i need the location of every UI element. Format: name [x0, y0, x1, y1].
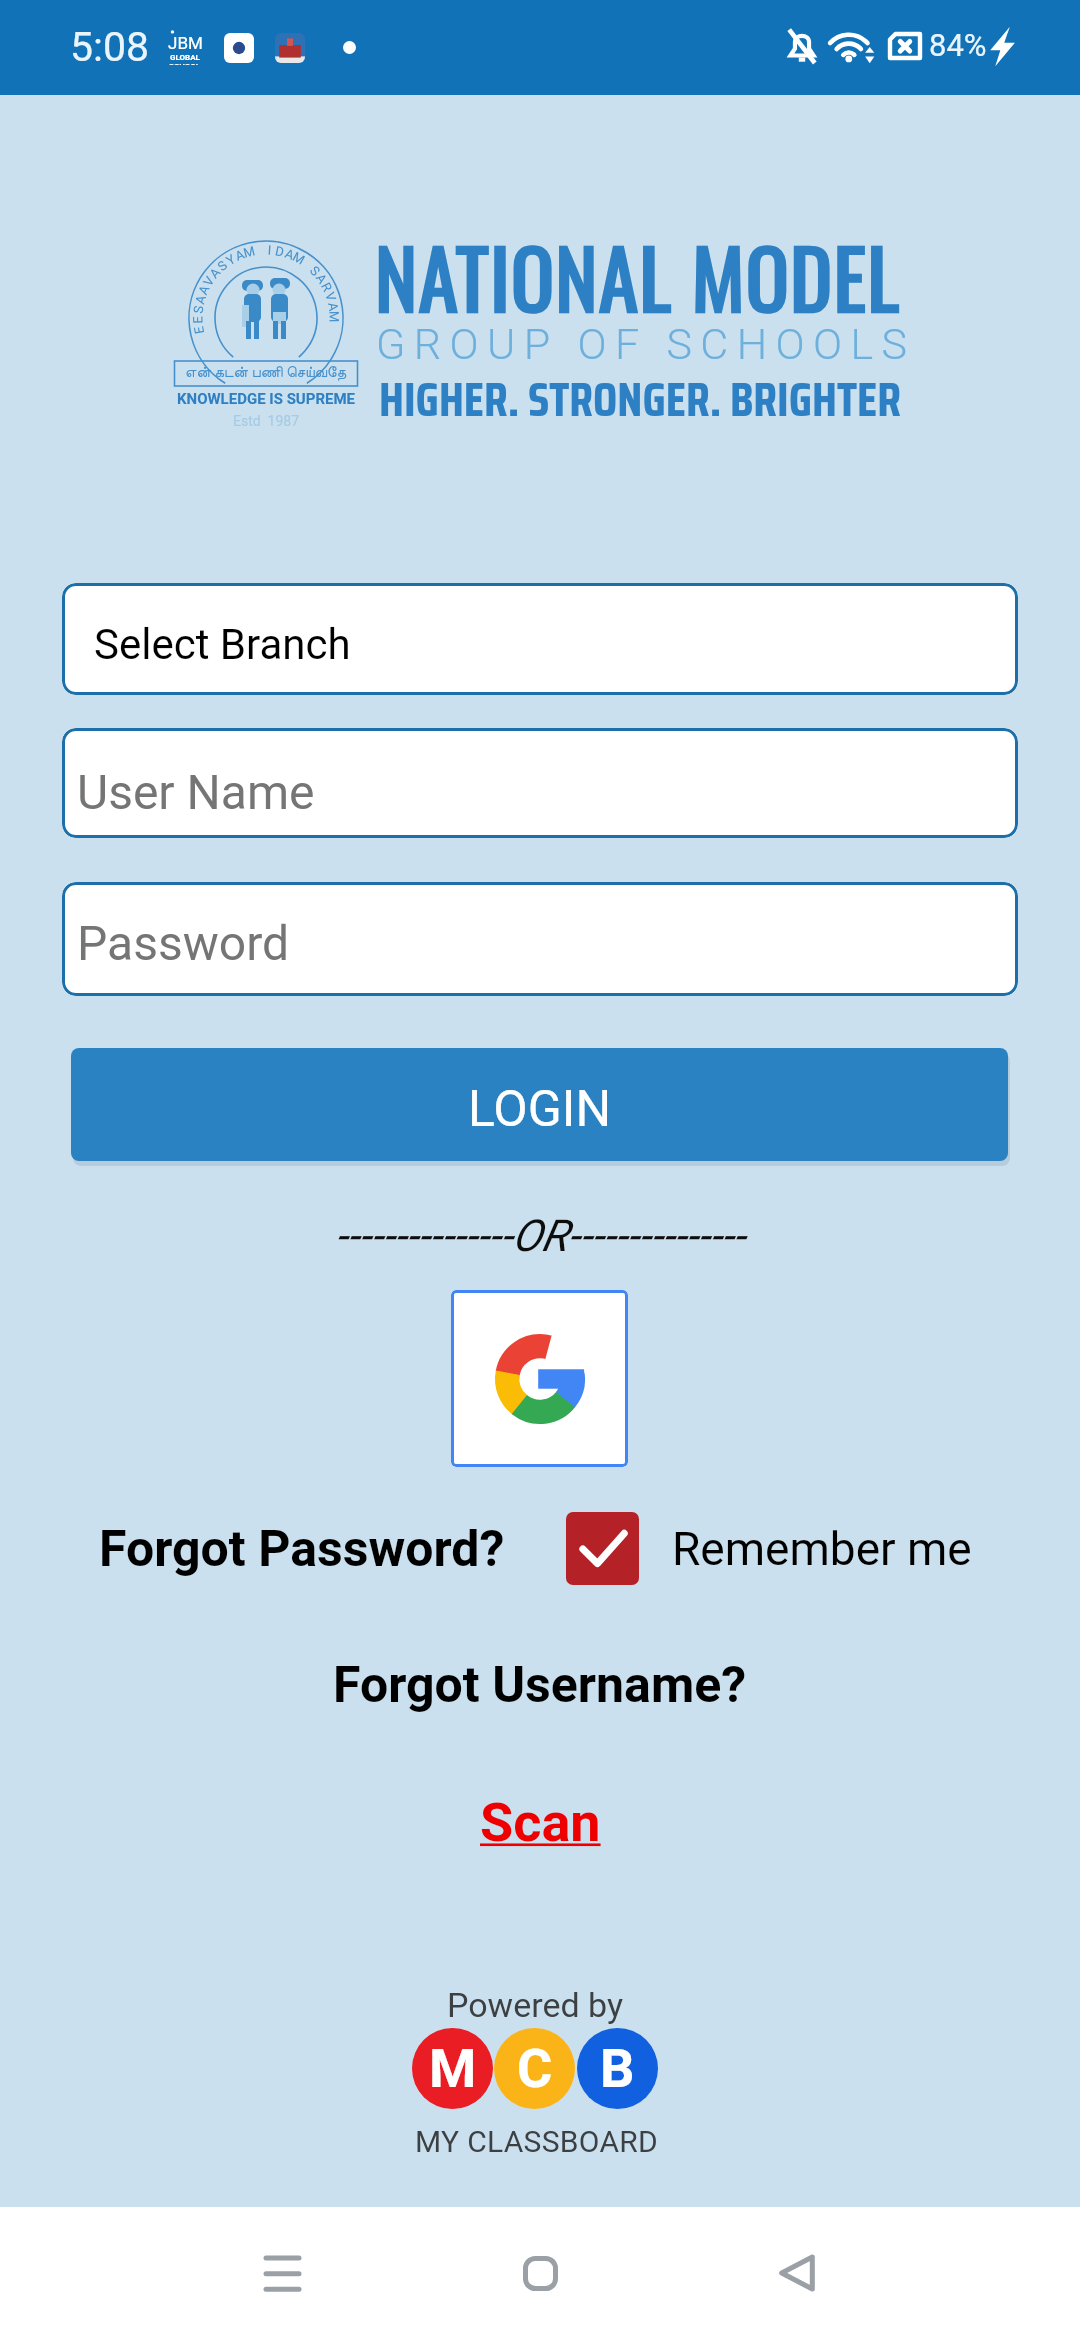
staticText: SCHOOL — [169, 62, 201, 65]
staticText: GLOBAL — [170, 53, 200, 62]
staticText: Powered by — [447, 1985, 624, 2025]
staticText: C — [517, 2037, 553, 2100]
button[interactable]: Forgot Password? — [99, 1520, 505, 1579]
button[interactable]: Password — [62, 882, 1018, 996]
staticText: GROUP OF SCHOOLS — [376, 319, 916, 369]
button[interactable]: Back — [737, 2223, 857, 2323]
button[interactable]: Remember me — [566, 1512, 972, 1585]
staticText: Forgot Password? — [99, 1520, 505, 1579]
staticText: LOGIN — [468, 1080, 612, 1139]
button[interactable]: Forgot Username? — [333, 1656, 747, 1715]
staticText: என் கடன் பணி செய்வதே — [185, 363, 347, 381]
staticText: User Name — [77, 764, 315, 820]
button[interactable]: Home — [480, 2223, 600, 2323]
staticText: Estd 1987 — [233, 413, 300, 429]
staticText: Remember me — [672, 1522, 972, 1576]
button[interactable]: Sign in with Google — [451, 1290, 628, 1467]
staticText: 84% — [929, 27, 987, 63]
staticText: NATIONAL MODEL — [375, 217, 901, 336]
staticText: Password — [77, 915, 290, 971]
staticText: Select Branch — [94, 620, 351, 669]
staticText: Scan — [480, 1791, 601, 1854]
staticText: KNOWLEDGE IS SUPREME — [177, 390, 356, 408]
staticText: MY CLASSBOARD — [415, 2124, 659, 2159]
staticText: JBM — [168, 33, 203, 53]
staticText: M — [429, 2037, 477, 2100]
button[interactable]: Recent apps — [222, 2223, 342, 2323]
button[interactable]: Scan — [480, 1791, 601, 1854]
button[interactable]: Select Branch — [62, 583, 1018, 695]
button[interactable]: LOGIN — [71, 1048, 1008, 1161]
staticText: Forgot Username? — [333, 1656, 747, 1715]
button[interactable]: User Name — [62, 728, 1018, 838]
staticText: HIGHER. STRONGER. BRIGHTER — [379, 362, 902, 438]
staticText: 5:08 — [70, 23, 150, 71]
staticText: ---------------OR--------------- — [335, 1210, 745, 1262]
staticText: B — [600, 2037, 635, 2100]
